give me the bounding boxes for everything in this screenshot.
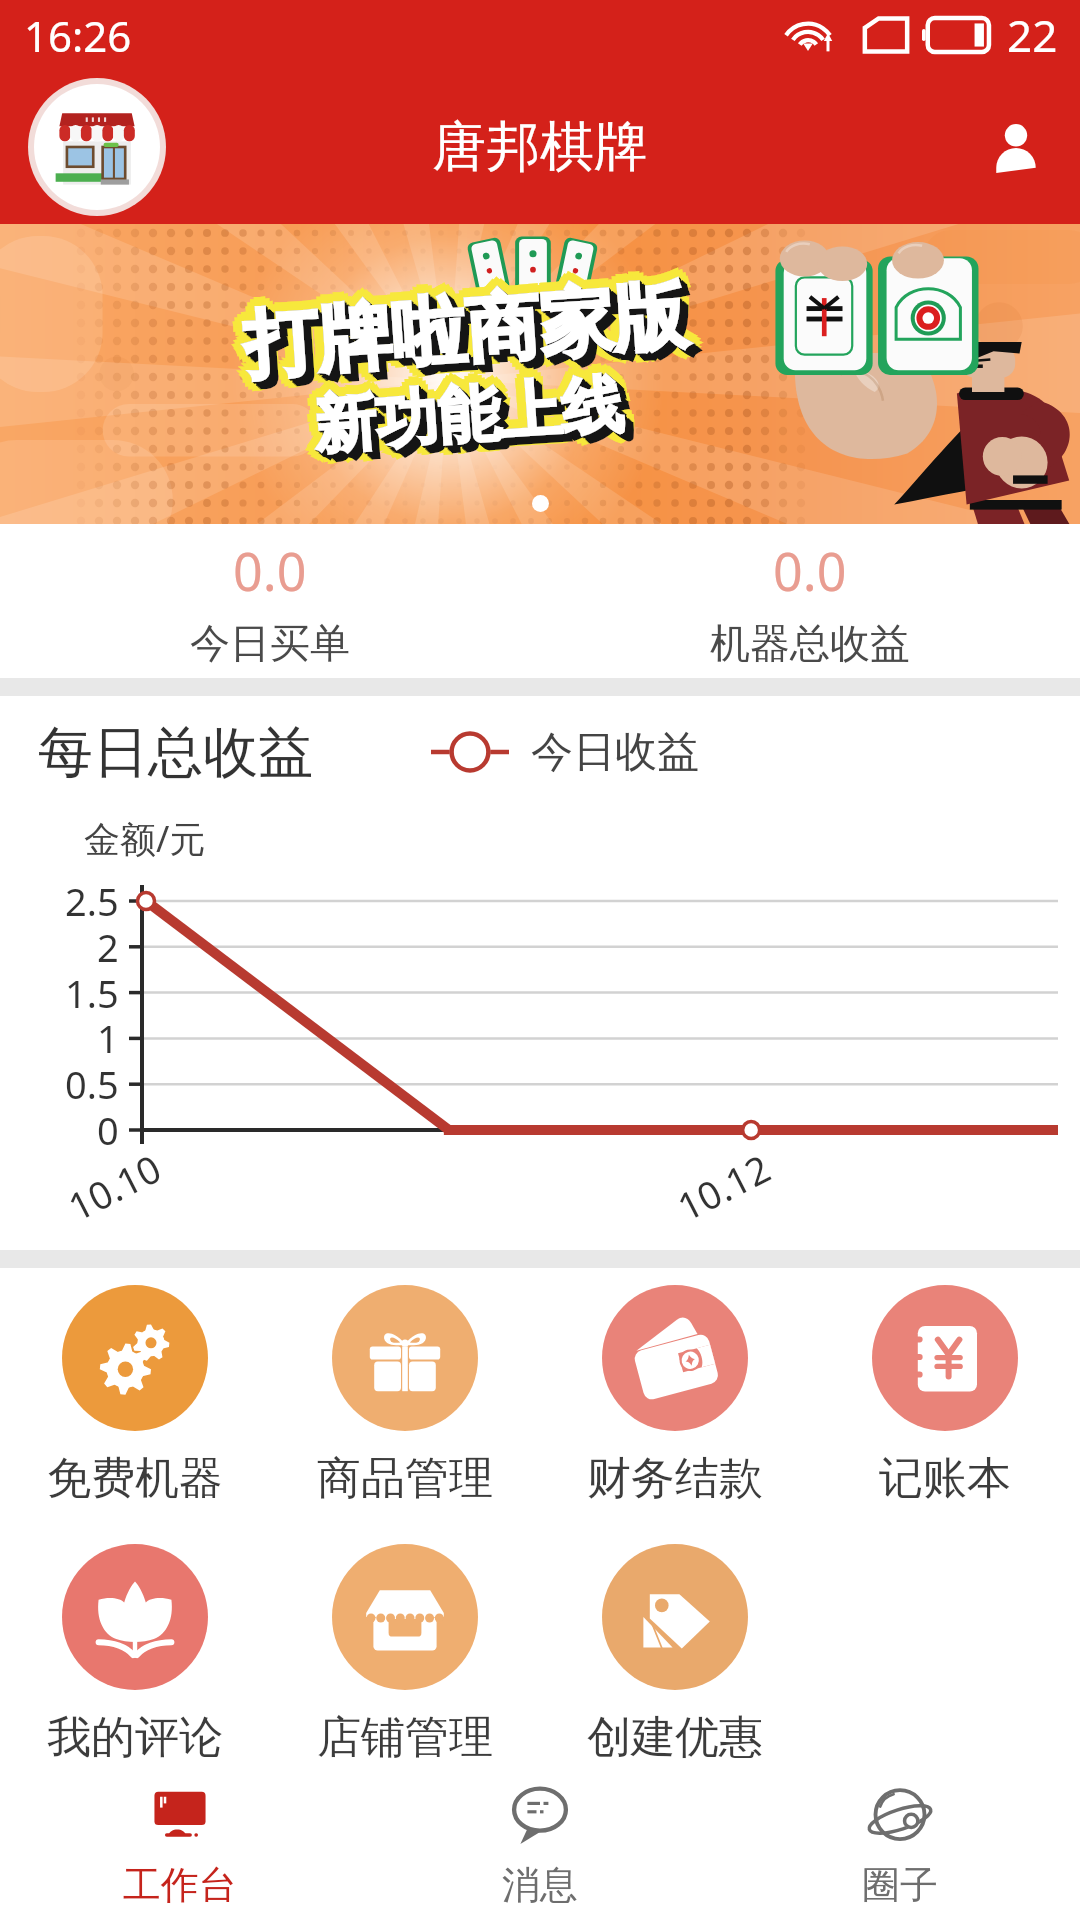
staticText: 金额/元 — [84, 814, 206, 863]
button[interactable]: 记账本 — [810, 1285, 1080, 1506]
staticText: 新功能上线 — [320, 365, 635, 464]
button[interactable]: Account — [976, 107, 1056, 187]
staticText: 今日收益 — [531, 726, 699, 779]
staticText: 新功能上线 — [319, 372, 633, 471]
staticText: 新功能上线 — [311, 356, 625, 456]
staticText: 新功能上线 — [312, 366, 627, 466]
staticText: 新功能上线 — [311, 365, 626, 465]
button[interactable]: 商品管理 — [270, 1285, 540, 1506]
button[interactable]: Promotion banner — [0, 224, 1080, 524]
staticText: 工作台 — [123, 1861, 237, 1909]
staticText: 创建优惠 — [587, 1710, 763, 1765]
staticText: 打牌啦商家版 — [247, 275, 697, 398]
staticText: 打牌啦商家版 — [248, 276, 698, 399]
staticText: 消息 — [502, 1861, 578, 1909]
button[interactable]: 0.0 — [0, 524, 540, 678]
staticText: 新功能上线 — [307, 359, 621, 458]
staticText: 今日买单 — [190, 618, 350, 668]
staticText: 我的评论 — [47, 1710, 223, 1765]
staticText: 新功能上线 — [305, 370, 619, 469]
staticText: 打牌啦商家版 — [244, 262, 694, 386]
staticText: 打牌啦商家版 — [241, 269, 690, 393]
staticText: 打牌啦商家版 — [241, 278, 691, 402]
button[interactable]: 财务结款 — [540, 1285, 810, 1506]
staticText: 新功能上线 — [320, 373, 634, 472]
staticText: 0.0 — [773, 535, 847, 606]
button[interactable]: 圈子 — [720, 1770, 1080, 1920]
button[interactable]: 我的评论 — [0, 1544, 270, 1765]
staticText: 圈子 — [862, 1861, 938, 1909]
staticText: 打牌啦商家版 — [246, 274, 695, 397]
staticText: 新功能上线 — [312, 374, 627, 474]
button[interactable]: Shop avatar — [28, 78, 166, 216]
staticText: 打牌啦商家版 — [247, 265, 697, 388]
staticText: 新功能上线 — [318, 371, 632, 470]
staticText: 打牌啦商家版 — [245, 276, 695, 399]
staticText: 打牌啦商家版 — [241, 269, 690, 393]
staticText: 打牌啦商家版 — [245, 273, 694, 397]
staticText: 新功能上线 — [304, 362, 619, 461]
staticText: 新功能上线 — [308, 373, 622, 472]
staticText: 新功能上线 — [318, 361, 633, 460]
staticText: 打牌啦商家版 — [250, 268, 699, 392]
staticText: 打牌啦商家版 — [242, 270, 691, 394]
button[interactable]: 店铺管理 — [270, 1544, 540, 1765]
button[interactable]: 消息 — [360, 1770, 720, 1920]
staticText: 打牌啦商家版 — [234, 274, 683, 397]
staticText: 打牌啦商家版 — [249, 277, 699, 400]
button[interactable]: 工作台 — [0, 1770, 360, 1920]
staticText: 新功能上线 — [302, 366, 617, 465]
staticText: 新功能上线 — [313, 367, 628, 467]
staticText: 打牌啦商家版 — [248, 273, 697, 396]
staticText: 唐邦棋牌 — [432, 113, 648, 181]
staticText: 0.0 — [233, 535, 307, 606]
button[interactable]: 免费机器 — [0, 1285, 270, 1506]
staticText: 16:26 — [24, 7, 132, 64]
button[interactable]: 0.0 — [540, 524, 1080, 678]
staticText: 打牌啦商家版 — [243, 271, 692, 395]
staticText: 新功能上线 — [316, 372, 630, 472]
staticText: 商品管理 — [317, 1451, 493, 1506]
staticText: 22 — [1007, 5, 1058, 65]
staticText: 新功能上线 — [318, 369, 633, 468]
staticText: 机器总收益 — [710, 618, 910, 668]
staticText: 打牌啦商家版 — [240, 260, 689, 384]
staticText: 新功能上线 — [315, 369, 630, 469]
staticText: 记账本 — [879, 1451, 1011, 1506]
staticText: 财务结款 — [587, 1451, 763, 1506]
staticText: 新功能上线 — [317, 370, 631, 469]
staticText: 新功能上线 — [315, 358, 629, 458]
staticText: 打牌啦商家版 — [232, 270, 681, 393]
staticText: 打牌啦商家版 — [233, 266, 683, 389]
staticText: 每日总收益 — [38, 718, 313, 787]
staticText: 打牌啦商家版 — [236, 262, 686, 386]
staticText: 新功能上线 — [311, 365, 626, 465]
staticText: 免费机器 — [47, 1451, 223, 1506]
button[interactable]: 创建优惠 — [540, 1544, 810, 1765]
staticText: 打牌啦商家版 — [237, 276, 687, 400]
staticText: 店铺管理 — [317, 1710, 493, 1765]
